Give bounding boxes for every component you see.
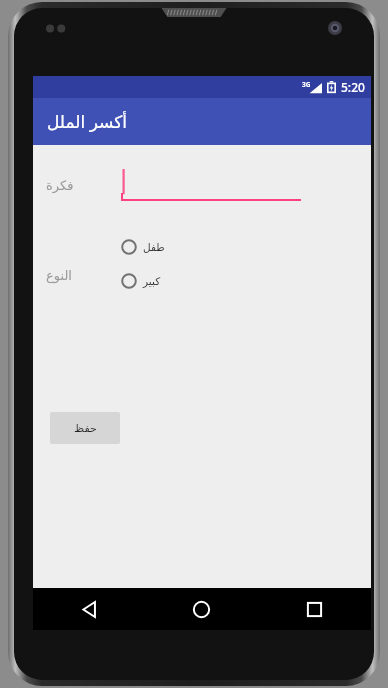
staticText: النوع	[46, 268, 72, 283]
staticText: 5:20	[341, 79, 365, 95]
button[interactable]: كبير	[121, 267, 161, 295]
button[interactable]: Home	[145, 588, 258, 630]
staticText: فكرة	[46, 178, 74, 193]
staticText: أكسر الملل	[47, 110, 128, 133]
button[interactable]: طفل	[121, 233, 165, 261]
button[interactable]	[121, 167, 301, 201]
button[interactable]: حفظ	[50, 412, 120, 444]
staticText: كبير	[143, 275, 161, 287]
button[interactable]: Recent apps	[258, 588, 371, 630]
staticText: طفل	[143, 241, 165, 253]
staticText: 3G	[302, 80, 311, 89]
staticText: حفظ	[74, 422, 97, 435]
button[interactable]: Back	[33, 588, 145, 630]
